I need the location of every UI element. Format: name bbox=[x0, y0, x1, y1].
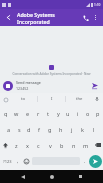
staticText: y bbox=[57, 110, 60, 117]
staticText: I bbox=[51, 96, 53, 102]
button[interactable]: SIM bbox=[3, 81, 13, 91]
button[interactable]: l bbox=[88, 121, 99, 137]
staticText: . bbox=[84, 158, 86, 165]
button[interactable]: p bbox=[93, 105, 103, 121]
button[interactable]: Back bbox=[16, 170, 29, 183]
button[interactable]: w bbox=[11, 105, 22, 121]
button[interactable]: m bbox=[80, 137, 92, 153]
staticText: o bbox=[86, 110, 90, 117]
button[interactable]: d bbox=[24, 121, 34, 137]
button[interactable]: j bbox=[66, 121, 77, 137]
button[interactable]: u bbox=[63, 105, 73, 121]
staticText: s bbox=[18, 126, 21, 133]
button[interactable]: q bbox=[0, 105, 11, 121]
staticText: the bbox=[76, 96, 83, 102]
staticText: Send message bbox=[16, 80, 41, 85]
button[interactable]: Send bbox=[89, 80, 100, 91]
button[interactable]: Shift bbox=[0, 137, 11, 153]
staticText: j bbox=[71, 126, 73, 133]
button[interactable]: s bbox=[14, 121, 24, 137]
staticText: Adobe Systems Incorporated bbox=[17, 11, 80, 25]
staticText: r bbox=[37, 110, 40, 117]
staticText: q bbox=[4, 110, 8, 117]
button[interactable]: Back bbox=[3, 12, 14, 23]
staticText: v bbox=[49, 142, 52, 149]
button[interactable]: . bbox=[81, 153, 89, 169]
staticText: i bbox=[77, 110, 79, 117]
button[interactable]: g bbox=[44, 121, 55, 137]
staticText: n bbox=[72, 142, 76, 149]
staticText: u bbox=[66, 110, 70, 117]
button[interactable]: n bbox=[68, 137, 80, 153]
button[interactable]: x bbox=[22, 137, 33, 153]
button[interactable]: t bbox=[43, 105, 53, 121]
button[interactable]: z bbox=[11, 137, 22, 153]
button[interactable]: Voice input bbox=[93, 95, 101, 103]
staticText: c bbox=[37, 142, 40, 149]
button[interactable]: k bbox=[77, 121, 88, 137]
staticText: d bbox=[27, 126, 31, 133]
staticText: x bbox=[26, 142, 29, 149]
button[interactable]: Emoji bbox=[22, 153, 31, 169]
staticText: 1:10 bbox=[94, 3, 101, 7]
button[interactable]: , bbox=[14, 153, 22, 169]
staticText: z bbox=[15, 142, 18, 149]
button[interactable]: Send bbox=[89, 155, 102, 168]
button[interactable]: ?123 bbox=[1, 153, 14, 169]
staticText: h bbox=[59, 126, 63, 133]
staticText: l bbox=[93, 126, 95, 133]
button[interactable]: Google bbox=[2, 96, 9, 103]
button[interactable]: o bbox=[83, 105, 93, 121]
staticText: m bbox=[83, 142, 89, 149]
staticText: a bbox=[7, 126, 11, 133]
staticText: ?123 bbox=[3, 159, 12, 164]
staticText: w bbox=[14, 110, 19, 117]
staticText: to bbox=[21, 96, 26, 102]
button[interactable]: v bbox=[44, 137, 56, 153]
button[interactable]: Home bbox=[45, 170, 58, 183]
button[interactable]: a bbox=[4, 121, 14, 137]
button[interactable]: to bbox=[9, 93, 37, 105]
button[interactable]: e bbox=[22, 105, 33, 121]
staticText: 123452 bbox=[16, 86, 29, 91]
staticText: p bbox=[96, 110, 100, 117]
staticText: e bbox=[26, 110, 30, 117]
staticText: t bbox=[47, 110, 49, 117]
button[interactable]: h bbox=[55, 121, 66, 137]
button[interactable]: I bbox=[38, 93, 65, 105]
staticText: k bbox=[81, 126, 84, 133]
button[interactable]: y bbox=[53, 105, 63, 121]
button[interactable]: Recents bbox=[74, 170, 87, 183]
button[interactable]: r bbox=[33, 105, 43, 121]
button[interactable]: b bbox=[56, 137, 68, 153]
button[interactable]: f bbox=[34, 121, 44, 137]
staticText: f bbox=[38, 126, 40, 133]
staticText: Conversation with Adobe Systems Incorpor… bbox=[3, 72, 100, 76]
button[interactable]: i bbox=[73, 105, 83, 121]
staticText: , bbox=[17, 158, 19, 165]
staticText: g bbox=[48, 126, 52, 133]
button[interactable]: Backspace bbox=[92, 137, 103, 153]
button[interactable]: Call bbox=[80, 12, 91, 23]
button[interactable]: the bbox=[66, 93, 93, 105]
button[interactable]: More options bbox=[91, 13, 100, 22]
button[interactable]: c bbox=[33, 137, 44, 153]
staticText: b bbox=[60, 142, 64, 149]
